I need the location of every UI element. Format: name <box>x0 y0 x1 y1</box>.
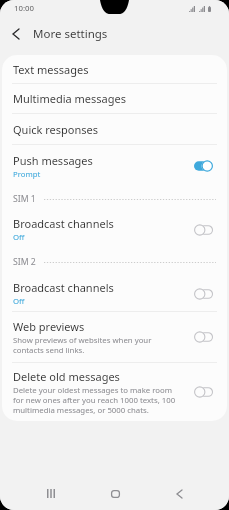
staticText: Multimedia messages <box>13 91 126 106</box>
staticText: Show previews of websites when your cont… <box>13 335 152 355</box>
staticText: SIM 1 <box>13 193 36 205</box>
staticText: Delete your oldest messages to make room… <box>13 385 176 415</box>
staticText: Broadcast channels <box>13 216 114 231</box>
staticText: SIM 2 <box>13 256 36 268</box>
button[interactable]: Broadcast channels <box>2 211 227 248</box>
staticText: Delete old messages <box>13 369 120 384</box>
button[interactable]: Home <box>93 477 137 510</box>
button[interactable]: Web previews <box>2 312 227 362</box>
button[interactable]: Back <box>5 23 27 45</box>
button[interactable]: Broadcast channels <box>2 276 227 311</box>
button[interactable]: Switch on <box>194 159 213 173</box>
button[interactable]: Back <box>157 477 201 510</box>
staticText: 10:00 <box>14 3 34 14</box>
button[interactable]: Push messages <box>2 145 227 187</box>
button[interactable]: Switch off <box>194 385 213 399</box>
staticText: Prompt <box>13 169 41 180</box>
button[interactable]: Recent apps <box>29 477 73 510</box>
button[interactable]: Quick responses <box>2 114 227 144</box>
staticText: Off <box>13 296 25 307</box>
staticText: Web previews <box>13 319 85 334</box>
staticText: Broadcast channels <box>13 280 114 295</box>
staticText: Off <box>13 232 25 243</box>
staticText: Push messages <box>13 153 93 168</box>
button[interactable]: Switch off <box>194 287 213 301</box>
staticText: Text messages <box>13 62 89 77</box>
staticText: More settings <box>33 26 108 42</box>
button[interactable]: Multimedia messages <box>2 84 227 113</box>
button[interactable]: Text messages <box>2 55 227 83</box>
button[interactable]: Switch off <box>194 330 213 344</box>
button[interactable]: Switch off <box>194 223 213 237</box>
staticText: Quick responses <box>13 122 98 137</box>
button[interactable]: Delete old messages <box>2 363 227 421</box>
